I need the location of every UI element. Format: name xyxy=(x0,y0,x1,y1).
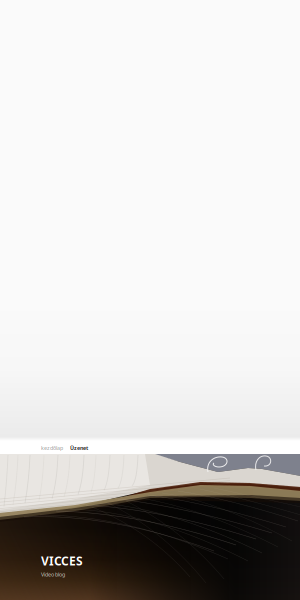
staticText: kezdőlap xyxy=(41,444,63,452)
staticText: Video blog xyxy=(41,571,65,578)
staticText: Üzenet xyxy=(70,444,88,452)
button[interactable]: Üzenet xyxy=(70,444,88,452)
staticText: VICCES xyxy=(41,553,83,569)
button[interactable]: kezdőlap xyxy=(41,444,63,452)
